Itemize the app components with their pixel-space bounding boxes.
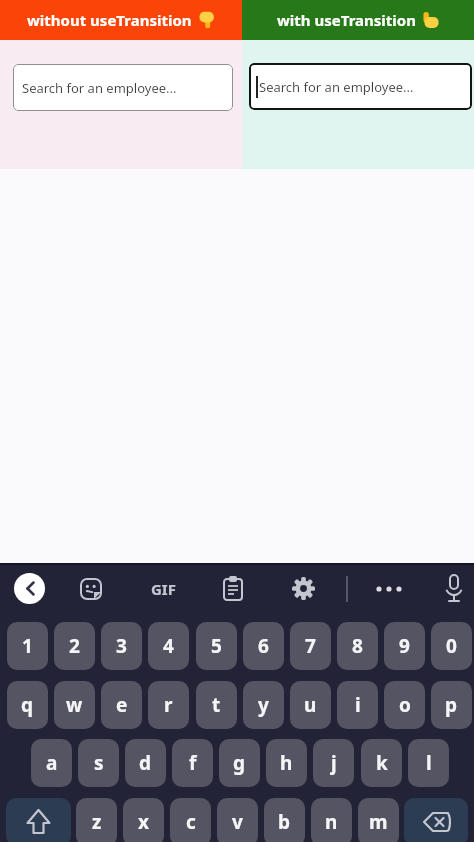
- staticText: u: [304, 692, 317, 718]
- staticText: 9: [399, 633, 410, 659]
- staticText: x: [138, 809, 149, 835]
- staticText: with useTransition: [277, 10, 416, 30]
- staticText: r: [164, 692, 173, 718]
- button[interactable]: 9: [384, 622, 425, 670]
- staticText: v: [232, 809, 243, 835]
- staticText: a: [46, 750, 58, 776]
- button[interactable]: 0: [431, 622, 472, 670]
- button[interactable]: r: [148, 681, 189, 729]
- button[interactable]: [14, 573, 45, 604]
- button[interactable]: s: [78, 739, 119, 787]
- button[interactable]: n: [311, 798, 352, 842]
- button[interactable]: 2: [54, 622, 95, 670]
- staticText: y: [258, 692, 269, 718]
- staticText: 1: [22, 633, 33, 659]
- staticText: p: [445, 692, 458, 718]
- staticText: t: [212, 692, 221, 718]
- button[interactable]: [78, 576, 104, 602]
- staticText: GIF: [151, 579, 176, 599]
- button[interactable]: d: [125, 739, 166, 787]
- button[interactable]: p: [431, 681, 472, 729]
- button[interactable]: o: [384, 681, 425, 729]
- button[interactable]: y: [243, 681, 284, 729]
- staticText: n: [325, 809, 338, 835]
- staticText: 4: [163, 633, 174, 659]
- staticText: c: [186, 809, 196, 835]
- staticText: 0: [446, 633, 457, 659]
- button[interactable]: 3: [101, 622, 142, 670]
- staticText: l: [426, 750, 432, 776]
- button[interactable]: j: [313, 739, 354, 787]
- button[interactable]: [404, 798, 468, 842]
- button[interactable]: 1: [7, 622, 48, 670]
- button[interactable]: t: [196, 681, 237, 729]
- button[interactable]: Search for an employee...: [249, 63, 472, 110]
- button[interactable]: GIF: [146, 575, 180, 603]
- button[interactable]: c: [170, 798, 211, 842]
- button[interactable]: [374, 577, 406, 601]
- staticText: 6: [258, 633, 269, 659]
- staticText: s: [94, 750, 104, 776]
- staticText: j: [331, 750, 337, 776]
- button[interactable]: without useTransition: [0, 0, 242, 40]
- staticText: b: [278, 809, 291, 835]
- staticText: h: [280, 750, 293, 776]
- staticText: 5: [211, 633, 222, 659]
- staticText: w: [66, 692, 83, 718]
- button[interactable]: i: [337, 681, 378, 729]
- staticText: 3: [116, 633, 127, 659]
- button[interactable]: u: [290, 681, 331, 729]
- staticText: q: [21, 692, 34, 718]
- button[interactable]: v: [217, 798, 258, 842]
- staticText: f: [189, 750, 197, 776]
- button[interactable]: q: [7, 681, 48, 729]
- button[interactable]: l: [408, 739, 449, 787]
- button[interactable]: [6, 798, 71, 842]
- staticText: Search for an employee...: [22, 79, 177, 97]
- button[interactable]: 4: [148, 622, 189, 670]
- button[interactable]: 5: [196, 622, 237, 670]
- staticText: 2: [69, 633, 80, 659]
- button[interactable]: e: [101, 681, 142, 729]
- button[interactable]: with useTransition: [242, 0, 474, 40]
- button[interactable]: h: [266, 739, 307, 787]
- staticText: Search for an employee...: [259, 78, 414, 96]
- button[interactable]: 7: [290, 622, 331, 670]
- staticText: e: [116, 692, 128, 718]
- staticText: without useTransition: [27, 10, 192, 30]
- button[interactable]: 6: [243, 622, 284, 670]
- button[interactable]: k: [361, 739, 402, 787]
- button[interactable]: m: [358, 798, 399, 842]
- staticText: 7: [305, 633, 316, 659]
- staticText: m: [369, 809, 388, 835]
- button[interactable]: Search for an employee...: [13, 64, 233, 111]
- button[interactable]: z: [76, 798, 117, 842]
- button[interactable]: g: [219, 739, 260, 787]
- staticText: z: [92, 809, 102, 835]
- staticText: 8: [352, 633, 363, 659]
- button[interactable]: w: [54, 681, 95, 729]
- button[interactable]: [291, 576, 316, 601]
- button[interactable]: [441, 573, 467, 605]
- button[interactable]: 8: [337, 622, 378, 670]
- button[interactable]: x: [123, 798, 164, 842]
- button[interactable]: a: [31, 739, 72, 787]
- staticText: i: [355, 692, 361, 718]
- staticText: k: [376, 750, 388, 776]
- staticText: d: [139, 750, 152, 776]
- button[interactable]: b: [264, 798, 305, 842]
- staticText: o: [399, 692, 411, 718]
- button[interactable]: f: [172, 739, 213, 787]
- button[interactable]: [220, 575, 246, 603]
- staticText: g: [233, 750, 246, 776]
